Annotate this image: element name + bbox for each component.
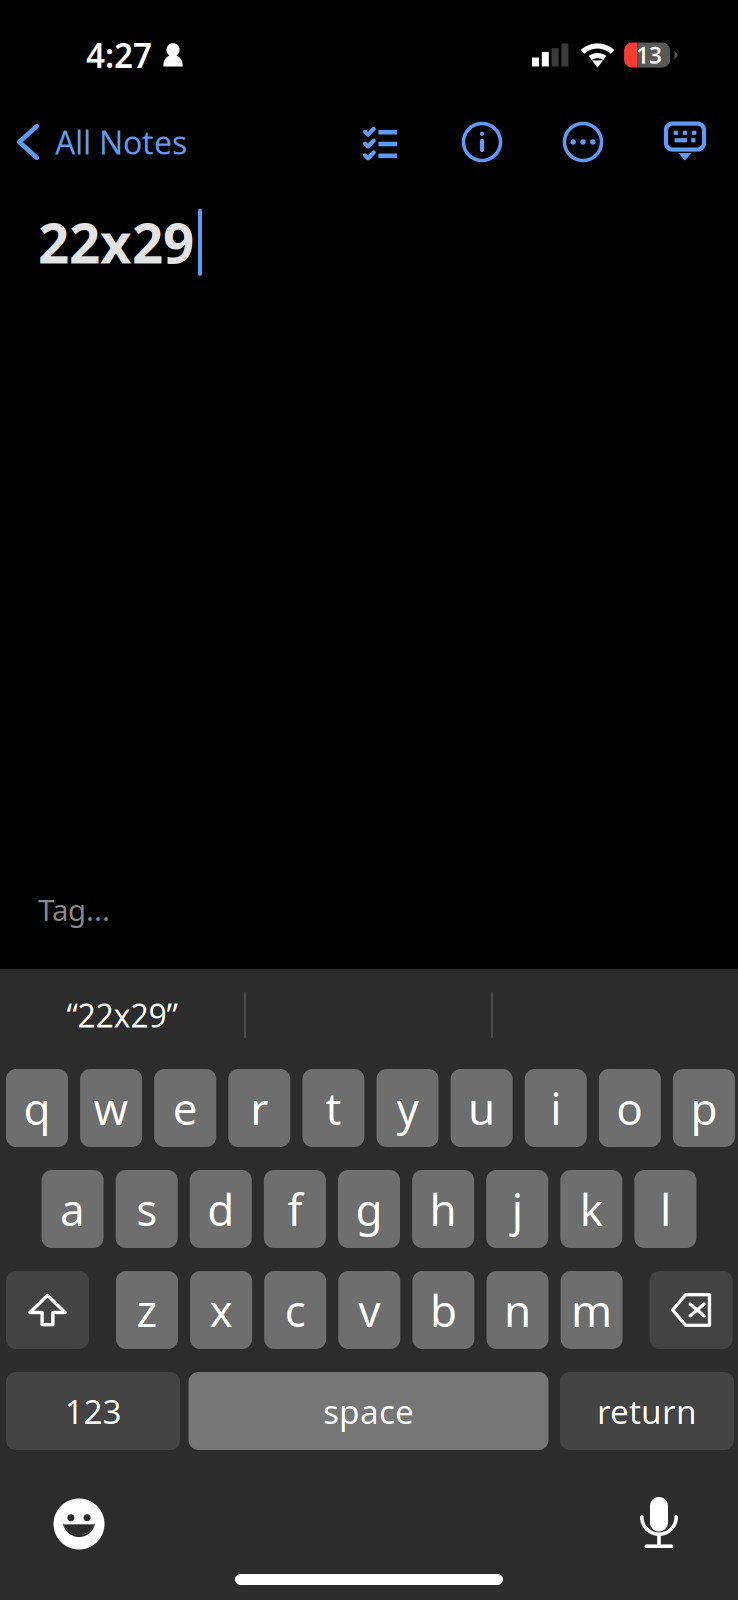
button[interactable]: n [486,1271,548,1349]
button[interactable]: f [264,1170,326,1248]
button[interactable]: j [486,1170,548,1248]
button[interactable]: x [190,1271,252,1349]
button[interactable]: u [451,1069,513,1147]
staticText: r [250,1079,268,1137]
button[interactable]: Dictate [631,1493,687,1555]
button[interactable]: h [412,1170,474,1248]
staticText: e [173,1079,198,1137]
staticText: t [325,1079,341,1137]
staticText: s [136,1180,157,1238]
staticText: c [285,1281,306,1339]
button[interactable]: g [338,1170,400,1248]
button[interactable]: b [412,1271,474,1349]
staticText: x [210,1281,233,1339]
button[interactable]: a [42,1170,104,1248]
staticText: b [430,1281,457,1339]
staticText: w [94,1079,129,1137]
staticText: i [550,1079,561,1137]
button[interactable]: m [561,1271,623,1349]
button[interactable]: v [338,1271,400,1349]
button[interactable]: y [376,1069,438,1147]
button[interactable]: More options [532,110,634,174]
staticText: z [136,1281,157,1339]
staticText: g [355,1180,382,1238]
staticText: space [323,1389,414,1433]
staticText: 22x29 [38,206,194,279]
staticText: h [430,1180,457,1238]
staticText: f [287,1180,302,1238]
staticText: 4:27 [86,33,152,77]
button[interactable]: return [560,1372,734,1450]
button[interactable]: r [228,1069,290,1147]
staticText: u [468,1079,495,1137]
staticText: j [512,1180,523,1238]
button[interactable]: All Notes [0,102,187,178]
staticText: d [207,1180,234,1238]
staticText: q [23,1079,50,1137]
staticText: Tag... [38,890,110,929]
button[interactable]: k [560,1170,622,1248]
staticText: n [504,1281,531,1339]
button[interactable]: Note details [432,110,532,174]
staticText: 13 [636,40,662,70]
staticText: return [597,1389,697,1433]
staticText: k [580,1180,603,1238]
button[interactable]: s [116,1170,178,1248]
staticText: v [358,1281,380,1339]
button[interactable]: d [190,1170,252,1248]
staticText: “22x29” [66,994,177,1036]
button[interactable]: w [80,1069,142,1147]
button[interactable]: i [525,1069,587,1147]
button[interactable]: c [264,1271,326,1349]
button[interactable]: l [634,1170,696,1248]
button[interactable]: p [673,1069,735,1147]
staticText: y [396,1079,418,1137]
button[interactable]: o [599,1069,661,1147]
staticText: a [60,1180,85,1238]
staticText: m [571,1281,612,1339]
button[interactable]: Shift [6,1271,89,1349]
button[interactable]: Delete [650,1271,733,1349]
staticText: All Notes [55,121,187,163]
staticText: o [616,1079,643,1137]
button[interactable]: z [116,1271,178,1349]
button[interactable]: space [188,1372,548,1450]
button[interactable]: 123 [6,1372,180,1450]
button[interactable]: Emoji keyboard [48,1493,110,1555]
button[interactable]: t [302,1069,364,1147]
button[interactable]: Hide Keyboard [634,110,736,174]
staticText: 123 [64,1389,121,1433]
button[interactable]: “22x29” [0,980,244,1050]
button[interactable]: e [154,1069,216,1147]
button[interactable]: Checklist [328,110,432,174]
staticText: l [660,1180,671,1238]
button[interactable]: q [6,1069,68,1147]
staticText: p [690,1079,717,1137]
